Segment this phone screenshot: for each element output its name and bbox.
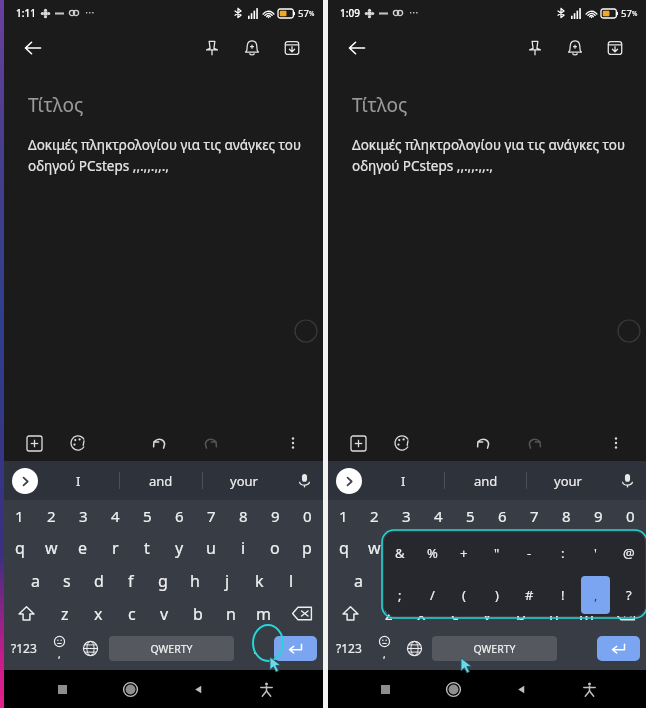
button[interactable]: d bbox=[83, 564, 115, 597]
button[interactable]: y bbox=[163, 531, 195, 564]
button[interactable]: m bbox=[247, 597, 280, 630]
button[interactable]: % bbox=[416, 532, 448, 574]
button[interactable]: Back bbox=[18, 33, 48, 63]
button[interactable]: ' bbox=[579, 532, 612, 574]
button[interactable]: Pin bbox=[518, 31, 552, 65]
button[interactable]: Back bbox=[506, 674, 536, 704]
button[interactable]: 0 bbox=[614, 500, 646, 531]
button[interactable]: c bbox=[438, 597, 471, 630]
button[interactable]: 8 bbox=[550, 500, 582, 531]
button[interactable]: Undo bbox=[470, 429, 498, 457]
button[interactable]: & bbox=[384, 532, 416, 574]
button[interactable]: h bbox=[502, 564, 534, 597]
button[interactable]: ( bbox=[448, 574, 480, 616]
button[interactable]: QWERTY bbox=[109, 636, 234, 661]
button[interactable]: Archive bbox=[598, 31, 632, 65]
button[interactable]: 4 bbox=[422, 500, 454, 531]
button[interactable]: Voice input bbox=[285, 461, 323, 500]
button[interactable]: Pin bbox=[195, 31, 229, 65]
button[interactable]: 8 bbox=[227, 500, 259, 531]
button[interactable]: b bbox=[504, 597, 537, 630]
button[interactable]: 7 bbox=[195, 500, 227, 531]
button[interactable]: w bbox=[359, 531, 390, 564]
button[interactable]: 6 bbox=[486, 500, 518, 531]
button[interactable]: Reminder bbox=[235, 31, 269, 65]
button[interactable]: Palette bbox=[64, 429, 92, 457]
button[interactable]: + bbox=[448, 532, 480, 574]
button[interactable]: 5 bbox=[131, 500, 163, 531]
button[interactable]: Emoji bbox=[369, 630, 399, 666]
button[interactable]: Backspace bbox=[603, 597, 646, 630]
button[interactable]: 1 bbox=[4, 500, 35, 531]
button[interactable]: n bbox=[214, 597, 247, 630]
button[interactable]: g bbox=[470, 564, 502, 597]
button[interactable]: d bbox=[406, 564, 438, 597]
button[interactable]: a bbox=[19, 564, 51, 597]
button[interactable]: w bbox=[35, 531, 67, 564]
button[interactable]: k bbox=[566, 564, 598, 597]
button[interactable]: Palette bbox=[388, 429, 416, 457]
button[interactable]: Emoji bbox=[44, 630, 75, 666]
button[interactable]: h bbox=[179, 564, 211, 597]
button[interactable]: s bbox=[374, 564, 406, 597]
button[interactable]: 9 bbox=[582, 500, 614, 531]
button[interactable]: QWERTY bbox=[432, 636, 557, 661]
button[interactable]: z bbox=[372, 597, 405, 630]
button[interactable]: Accessibility bbox=[251, 674, 281, 704]
button[interactable]: More options bbox=[602, 429, 630, 457]
button[interactable]: / bbox=[416, 574, 448, 616]
button[interactable]: r bbox=[422, 531, 454, 564]
button[interactable]: 3 bbox=[67, 500, 99, 531]
button[interactable]: Redo bbox=[196, 429, 224, 457]
button[interactable]: Expand toolbar bbox=[12, 468, 38, 494]
button[interactable]: : bbox=[546, 532, 579, 574]
button[interactable]: I bbox=[362, 461, 444, 500]
button[interactable]: s bbox=[51, 564, 83, 597]
button[interactable]: Voice input bbox=[608, 461, 646, 500]
button[interactable]: 1 bbox=[328, 500, 359, 531]
button[interactable]: f bbox=[438, 564, 470, 597]
button[interactable]: l bbox=[598, 564, 630, 597]
button[interactable]: m bbox=[570, 597, 603, 630]
button[interactable]: c bbox=[115, 597, 148, 630]
button[interactable]: Accessibility bbox=[574, 674, 604, 704]
button[interactable]: Reminder bbox=[558, 31, 592, 65]
button[interactable]: q bbox=[328, 531, 359, 564]
button[interactable]: Home bbox=[438, 674, 468, 704]
button[interactable]: Add bbox=[344, 429, 372, 457]
button[interactable]: 2 bbox=[359, 500, 390, 531]
button[interactable]: e bbox=[390, 531, 422, 564]
button[interactable]: Home bbox=[115, 674, 145, 704]
button[interactable]: " bbox=[480, 532, 513, 574]
button[interactable]: 5 bbox=[454, 500, 486, 531]
button[interactable]: y bbox=[486, 531, 518, 564]
button[interactable]: 7 bbox=[518, 500, 550, 531]
button[interactable]: Recents bbox=[370, 674, 400, 704]
button[interactable]: Add bbox=[20, 429, 48, 457]
button[interactable]: @ bbox=[612, 532, 645, 574]
button[interactable]: ?123 bbox=[328, 630, 369, 666]
button[interactable]: Change language bbox=[75, 630, 106, 666]
button[interactable]: k bbox=[243, 564, 275, 597]
button[interactable]: # bbox=[513, 574, 546, 616]
button[interactable]: Archive bbox=[275, 31, 309, 65]
button[interactable]: 6 bbox=[163, 500, 195, 531]
button[interactable]: n bbox=[537, 597, 570, 630]
button[interactable]: ) bbox=[480, 574, 513, 616]
button[interactable]: t bbox=[131, 531, 163, 564]
button[interactable]: your bbox=[203, 461, 285, 500]
button[interactable]: z bbox=[48, 597, 82, 630]
button[interactable]: e bbox=[67, 531, 99, 564]
button[interactable]: Enter bbox=[597, 636, 640, 661]
button[interactable]: f bbox=[115, 564, 147, 597]
button[interactable]: and bbox=[120, 461, 202, 500]
button[interactable]: Redo bbox=[520, 429, 548, 457]
button[interactable]: ; bbox=[384, 574, 416, 616]
button[interactable]: u bbox=[518, 531, 550, 564]
button[interactable]: x bbox=[405, 597, 438, 630]
button[interactable]: ! bbox=[546, 574, 579, 616]
button[interactable]: ? bbox=[612, 574, 645, 616]
button[interactable]: j bbox=[534, 564, 566, 597]
button[interactable]: . bbox=[237, 630, 274, 666]
button[interactable]: x bbox=[82, 597, 115, 630]
